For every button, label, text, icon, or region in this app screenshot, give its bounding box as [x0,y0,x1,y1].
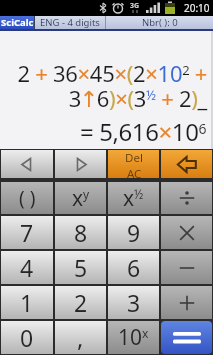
staticText: 7 [20,217,34,248]
button[interactable]: 8 [55,216,106,249]
staticText: 0 [20,322,34,353]
staticText: 8 [74,217,88,248]
staticText: xy [72,184,90,213]
button[interactable]: SciCalc [0,16,34,29]
staticText: 4 [20,252,34,283]
staticText: x½ [123,184,144,213]
button[interactable] [161,150,212,178]
staticText: AC [127,166,142,178]
button[interactable]: xy [55,182,106,214]
staticText: 3G [130,1,140,11]
button[interactable] [161,286,212,319]
button[interactable]: 9 [108,216,159,249]
staticText: = 5,616×106 [80,115,207,148]
button[interactable]: 10x [108,321,159,354]
button[interactable]: 2 [55,286,106,319]
button[interactable] [1,150,53,178]
button[interactable]: x½ [108,182,159,214]
staticText: 5 [74,252,88,283]
button[interactable]: ENG - 4 digits [35,16,105,29]
button[interactable]: 7 [1,216,53,249]
staticText: Del [125,150,143,166]
staticText: ENG - 4 digits [40,16,100,29]
button[interactable]: 0 [1,321,53,354]
staticText: 6 [127,252,141,283]
staticText: SciCalc [1,16,34,29]
button[interactable] [161,182,212,214]
button[interactable]: Nbr( ): 0 [106,16,213,29]
button[interactable] [55,150,106,178]
button[interactable] [161,321,212,354]
button[interactable]: ( ) [1,182,53,214]
button[interactable]: Del [108,150,159,178]
staticText: , [77,321,84,354]
button[interactable]: 6 [108,251,159,284]
staticText: 1 [20,287,34,318]
staticText: 20:10 [184,1,210,15]
staticText: 3↑6)×(3½ + 2)_ [68,83,207,113]
staticText: 9 [127,217,141,248]
staticText: ( ) [19,185,36,211]
staticText: 2 [74,287,88,318]
button[interactable]: 4 [1,251,53,284]
button[interactable]: 3 [108,286,159,319]
staticText: Nbr( ): 0 [142,16,178,29]
staticText: 3 [127,287,141,318]
button[interactable] [161,216,212,249]
staticText: 10x [118,323,149,352]
staticText: 2 + 36×45×(2×102 + [17,58,207,88]
button[interactable]: 5 [55,251,106,284]
button[interactable]: , [55,321,106,354]
button[interactable] [161,251,212,284]
button[interactable]: 1 [1,286,53,319]
